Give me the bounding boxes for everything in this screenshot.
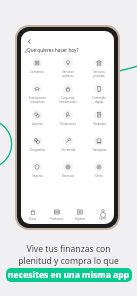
button[interactable]: Servicios privados [84, 58, 114, 77]
button[interactable]: Inicio [21, 209, 45, 221]
staticText: Productos [50, 217, 64, 221]
button[interactable]: Donaciones [53, 110, 83, 126]
button[interactable]: Contenido digital [84, 84, 114, 103]
staticText: Transporte [92, 148, 107, 152]
staticText: Droguerías [30, 148, 45, 152]
button[interactable]: Ferreterías [53, 136, 83, 152]
button[interactable]: Conjuntos residenciales [53, 84, 83, 103]
staticText: plenitud y compra lo que [18, 255, 119, 267]
staticText: Donaciones [60, 122, 76, 126]
staticText: Vive tus finanzas con [26, 243, 111, 255]
button[interactable]: Transporte [84, 136, 114, 152]
button[interactable]: Aportes [22, 110, 52, 126]
staticText: necesites en una misma app [8, 269, 130, 281]
staticText: Ferreterías [61, 148, 76, 152]
button[interactable]: Recaudos [84, 110, 114, 126]
staticText: Otros [95, 174, 103, 178]
staticText: Remesas [62, 174, 74, 178]
staticText: Explora [75, 217, 85, 221]
button[interactable]: Seguros [22, 162, 52, 178]
button[interactable]: Droguerías [22, 136, 52, 152]
staticText: Servicios privados [93, 70, 105, 77]
staticText: Servicios públicos [62, 70, 74, 77]
staticText: ¿Qué quieres hacer hoy? [25, 47, 79, 53]
button[interactable]: Perfil [91, 209, 114, 221]
staticText: Convenios [30, 70, 44, 74]
button[interactable]: Remesas [53, 162, 83, 178]
button[interactable]: Back [25, 37, 34, 46]
staticText: Conjuntos residenciales [59, 96, 77, 103]
staticText: Instituciones educativas [29, 96, 46, 103]
staticText: Perfil [99, 217, 106, 221]
staticText: Seguros [32, 174, 43, 178]
button[interactable]: Otros [84, 162, 114, 178]
button[interactable]: Productos [45, 209, 68, 221]
button[interactable]: Convenios [22, 58, 52, 74]
button[interactable]: Instituciones educativas [22, 84, 52, 103]
staticText: Recaudos [93, 122, 106, 126]
button[interactable]: Servicios públicos [53, 58, 83, 77]
staticText: Contenido digital [92, 96, 106, 103]
button[interactable]: Explora [68, 209, 91, 221]
staticText: Aportes [32, 122, 43, 126]
staticText: Inicio [29, 217, 37, 221]
